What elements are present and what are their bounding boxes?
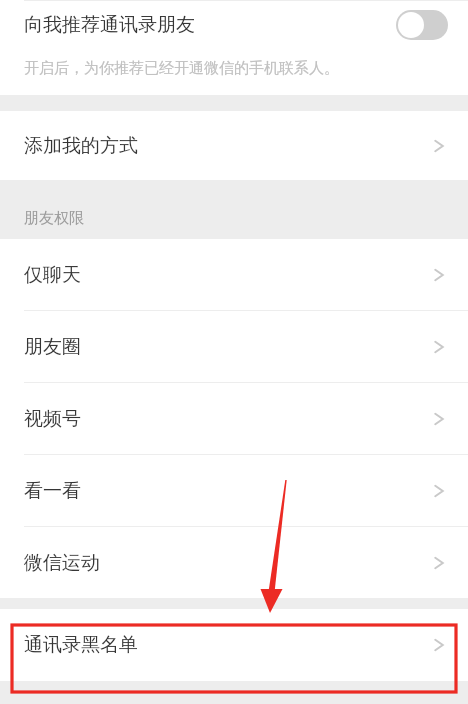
- staticText: 看一看: [24, 479, 81, 503]
- staticText: 仅聊天: [24, 263, 81, 287]
- staticText: 向我推荐通讯录朋友: [24, 13, 195, 37]
- button[interactable]: 看一看: [0, 455, 468, 526]
- button[interactable]: Recommend contacts toggle, off: [396, 10, 448, 40]
- staticText: 添加我的方式: [24, 134, 138, 158]
- button[interactable]: 视频号: [0, 383, 468, 454]
- staticText: 通讯录黑名单: [24, 633, 138, 657]
- button[interactable]: 朋友圈: [0, 311, 468, 382]
- button[interactable]: 向我推荐通讯录朋友: [0, 1, 468, 48]
- button[interactable]: 微信运动: [0, 527, 468, 598]
- staticText: 开启后，为你推荐已经开通微信的手机联系人。: [24, 59, 339, 78]
- staticText: 微信运动: [24, 551, 100, 575]
- staticText: 朋友权限: [24, 209, 84, 228]
- button[interactable]: 添加我的方式: [0, 111, 468, 180]
- button[interactable]: 仅聊天: [0, 239, 468, 310]
- staticText: 视频号: [24, 407, 81, 431]
- button[interactable]: 通讯录黑名单: [0, 609, 468, 681]
- staticText: 朋友圈: [24, 335, 81, 359]
